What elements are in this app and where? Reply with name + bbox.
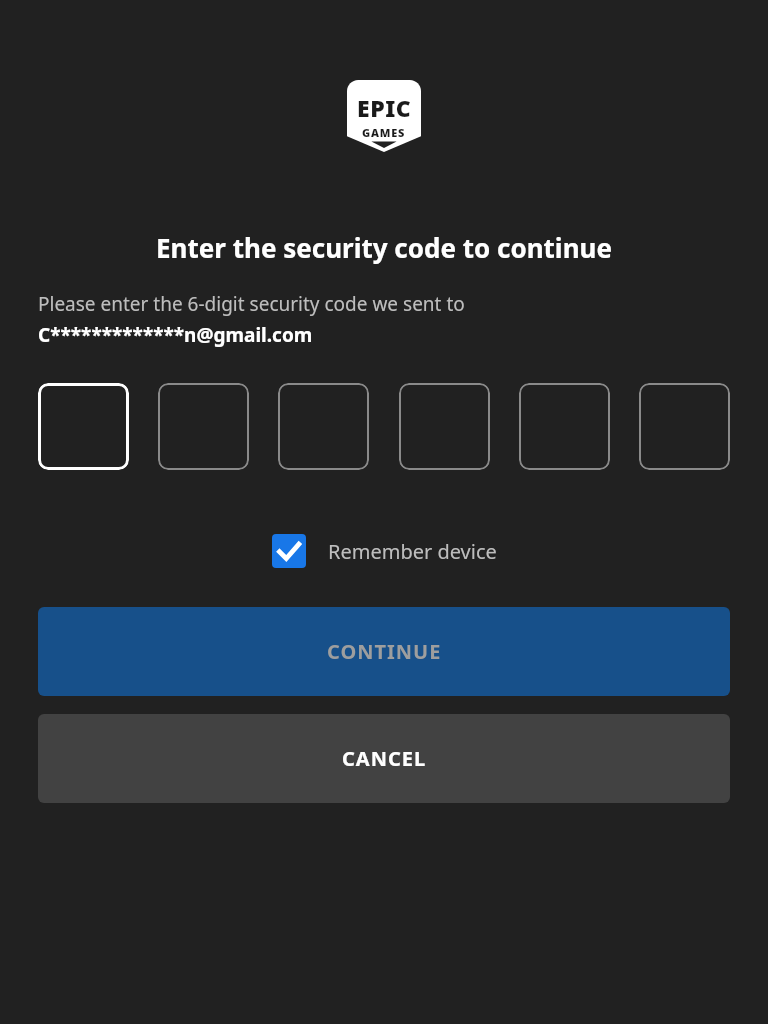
staticText: Enter the security code to continue [156, 230, 612, 265]
staticText: CANCEL [342, 745, 427, 772]
button[interactable]: Remember device checkbox [272, 534, 497, 568]
button[interactable]: CONTINUE [38, 607, 730, 696]
staticText: C*************n@gmail.com [38, 322, 313, 348]
staticText: GAMES [362, 125, 406, 140]
staticText: Remember device [328, 538, 497, 565]
button[interactable]: Security code digit [158, 383, 249, 470]
button[interactable]: Security code digit [399, 383, 490, 470]
button[interactable]: Security code digit [278, 383, 369, 470]
staticText: EPIC [357, 92, 412, 123]
button[interactable]: Security code digit [519, 383, 610, 470]
button[interactable]: CANCEL [38, 714, 730, 803]
button[interactable]: Security code digit [639, 383, 730, 470]
button[interactable]: Remember device checkbox [272, 534, 306, 568]
staticText: Please enter the 6-digit security code w… [38, 291, 465, 317]
staticText: CONTINUE [327, 638, 442, 665]
button[interactable]: Security code digit [38, 383, 129, 470]
